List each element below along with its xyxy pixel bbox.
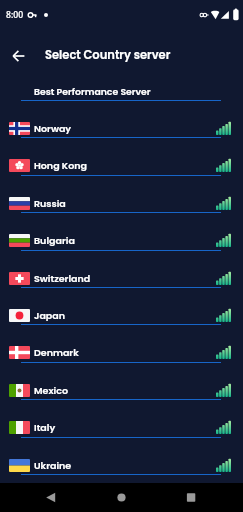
staticText: Russia xyxy=(34,197,66,210)
button[interactable]: Japan xyxy=(0,287,243,324)
staticText: Select Country server xyxy=(45,47,171,63)
button[interactable]: Switzerland xyxy=(0,250,243,287)
button[interactable]: Hong Kong xyxy=(0,137,243,174)
staticText: Denmark xyxy=(34,346,79,359)
staticText: Ukraine xyxy=(34,459,72,472)
staticText: Italy xyxy=(34,421,56,434)
button[interactable]: Norway xyxy=(0,100,243,137)
button[interactable]: Mexico xyxy=(0,362,243,399)
button[interactable]: Ukraine xyxy=(0,437,243,474)
staticText: 8:00 xyxy=(6,9,24,21)
button[interactable]: Bulgaria xyxy=(0,212,243,249)
button[interactable]: Russia xyxy=(0,175,243,212)
staticText: Japan xyxy=(34,309,66,322)
staticText: Hong Kong xyxy=(34,159,87,172)
button[interactable]: Italy xyxy=(0,399,243,436)
staticText: Norway xyxy=(34,122,72,135)
button[interactable]: Denmark xyxy=(0,324,243,361)
staticText: Mexico xyxy=(34,384,68,397)
button[interactable]: Back xyxy=(6,44,30,68)
staticText: Bulgaria xyxy=(34,234,75,247)
staticText: Best Performance Server xyxy=(34,85,151,98)
staticText: Switzerland xyxy=(34,272,91,285)
